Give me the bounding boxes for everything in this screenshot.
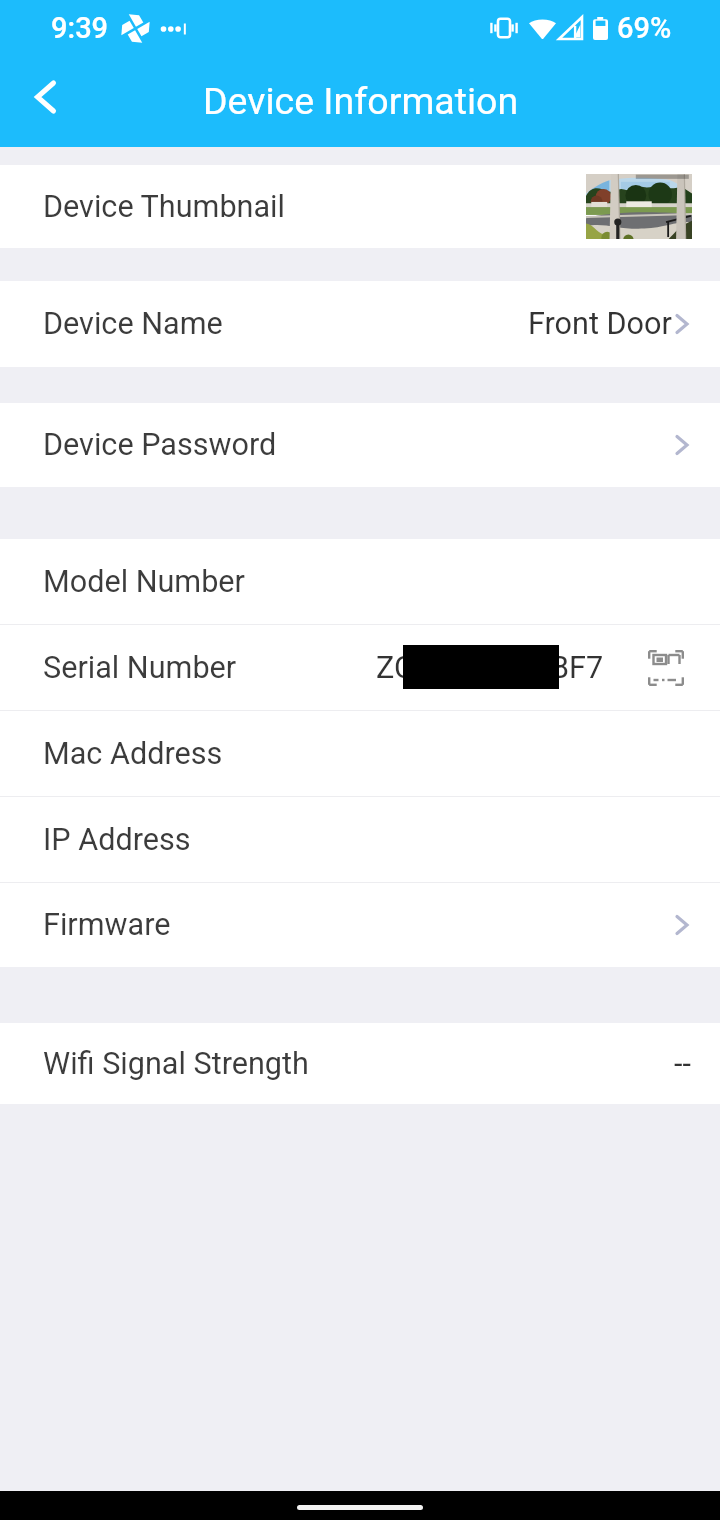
staticText: BF7 (550, 650, 604, 686)
button[interactable]: Device Name (0, 281, 720, 367)
staticText: Device Password (43, 427, 277, 463)
staticText: Device Thumbnail (43, 189, 285, 225)
staticText: Mac Address (43, 736, 223, 772)
staticText: 69% (617, 11, 672, 45)
button[interactable]: Mac Address (0, 711, 720, 796)
staticText: ZC (376, 650, 414, 686)
button[interactable]: Firmware (0, 883, 720, 967)
staticText: Device Name (43, 306, 223, 342)
button[interactable]: Device Password (0, 403, 720, 487)
staticText: Device Information (203, 79, 519, 123)
button[interactable]: Back (0, 56, 92, 147)
staticText: Model Number (43, 564, 245, 600)
staticText: Serial Number (43, 650, 237, 686)
button[interactable]: Wifi Signal Strength (0, 1023, 720, 1104)
button[interactable]: Device Thumbnail (0, 165, 720, 248)
staticText: IP Address (43, 822, 191, 858)
button[interactable]: Serial Number (0, 625, 720, 710)
button[interactable]: IP Address (0, 797, 720, 882)
staticText: -- (674, 1046, 691, 1082)
staticText: 9:39 (51, 11, 109, 45)
button[interactable]: Scan serial number (648, 650, 684, 686)
staticText: Front Door (528, 306, 672, 342)
button[interactable]: Device thumbnail (586, 174, 692, 239)
staticText: Firmware (43, 907, 171, 943)
button[interactable]: Model Number (0, 539, 720, 624)
staticText: Wifi Signal Strength (43, 1046, 309, 1082)
